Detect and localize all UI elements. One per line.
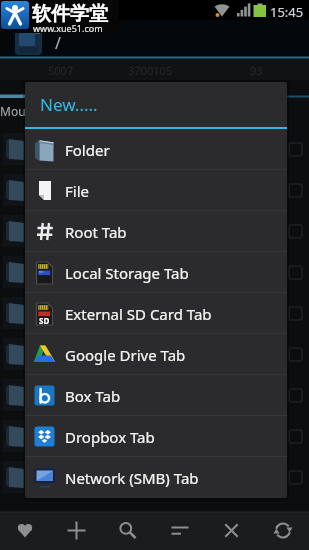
staticText: Mou — [0, 103, 26, 119]
staticText: Network (SMB) Tab — [65, 468, 199, 488]
staticText: Local Storage Tab — [65, 263, 189, 283]
staticText: Folder — [65, 140, 110, 160]
staticText: www.xue51.com — [33, 22, 103, 34]
staticText: 15:45 — [270, 3, 304, 21]
staticText: File — [65, 181, 89, 201]
staticText: SD — [39, 315, 50, 326]
staticText: Google Drive Tab — [65, 345, 186, 365]
staticText: Box Tab — [65, 386, 121, 406]
staticText: 3700105 — [128, 63, 173, 78]
staticText: 93 — [250, 63, 263, 78]
staticText: New..... — [40, 93, 98, 116]
staticText: 5007 — [48, 63, 74, 78]
staticText: External SD Card Tab — [65, 304, 212, 324]
staticText: Dropbox Tab — [65, 427, 155, 447]
staticText: / — [55, 32, 61, 54]
staticText: 软件学堂 — [32, 2, 108, 26]
staticText: Root Tab — [65, 222, 127, 242]
